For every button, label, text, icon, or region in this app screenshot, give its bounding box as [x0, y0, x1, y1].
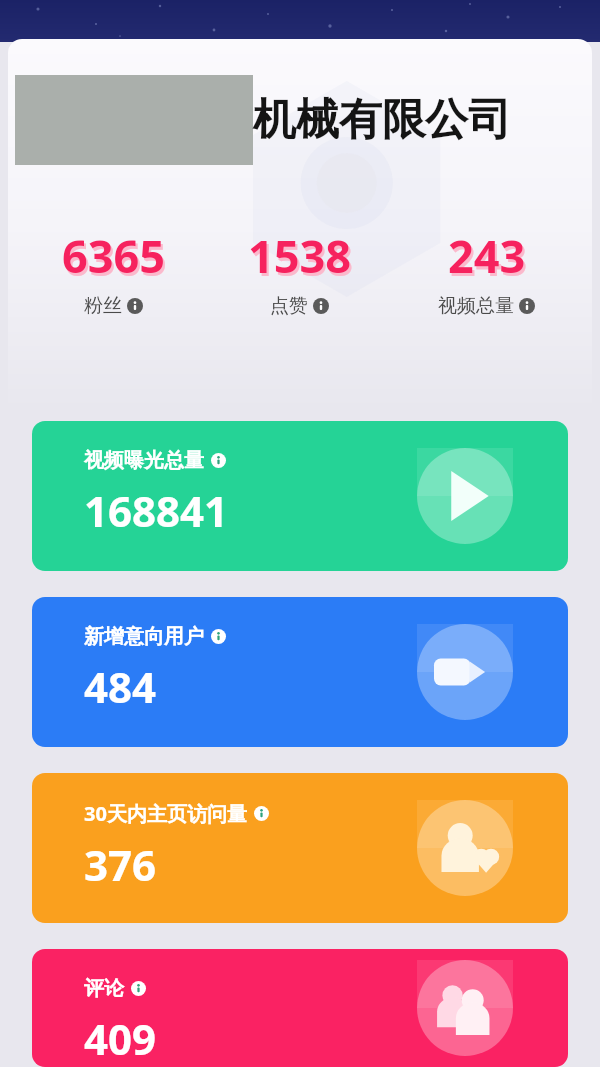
- button[interactable]: 1538: [206, 225, 393, 318]
- other: 视频曝光总量: [417, 448, 513, 544]
- staticText: 机械有限公司: [253, 93, 511, 147]
- other: 新增意向用户: [417, 624, 513, 720]
- staticText: 484: [84, 658, 157, 715]
- other: 30天内主页访问量: [417, 800, 513, 896]
- staticText: 6365: [62, 225, 165, 286]
- button[interactable]: 新增意向用户: [32, 597, 568, 747]
- staticText: 新增意向用户: [84, 624, 204, 649]
- staticText: 1538: [250, 228, 353, 289]
- staticText: 168841: [84, 482, 229, 539]
- staticText: 视频曝光总量: [84, 448, 204, 473]
- staticText: 30天内主页访问量: [84, 800, 247, 827]
- staticText: 409: [84, 1010, 157, 1067]
- staticText: 视频总量: [438, 294, 514, 318]
- staticText: 点赞: [270, 294, 308, 318]
- staticText: 243: [450, 228, 528, 289]
- button[interactable]: 30天内主页访问量: [32, 773, 568, 923]
- staticText: 评论: [84, 976, 124, 1001]
- other: 评论: [417, 960, 513, 1056]
- button[interactable]: 视频曝光总量: [32, 421, 568, 571]
- staticText: 粉丝: [84, 294, 122, 318]
- button[interactable]: 6365: [20, 225, 206, 318]
- button[interactable]: 243: [393, 225, 580, 318]
- staticText: 243: [448, 225, 526, 286]
- button[interactable]: 评论: [32, 949, 568, 1067]
- staticText: 1538: [248, 225, 351, 286]
- staticText: 6365: [64, 228, 167, 289]
- staticText: 376: [84, 836, 157, 893]
